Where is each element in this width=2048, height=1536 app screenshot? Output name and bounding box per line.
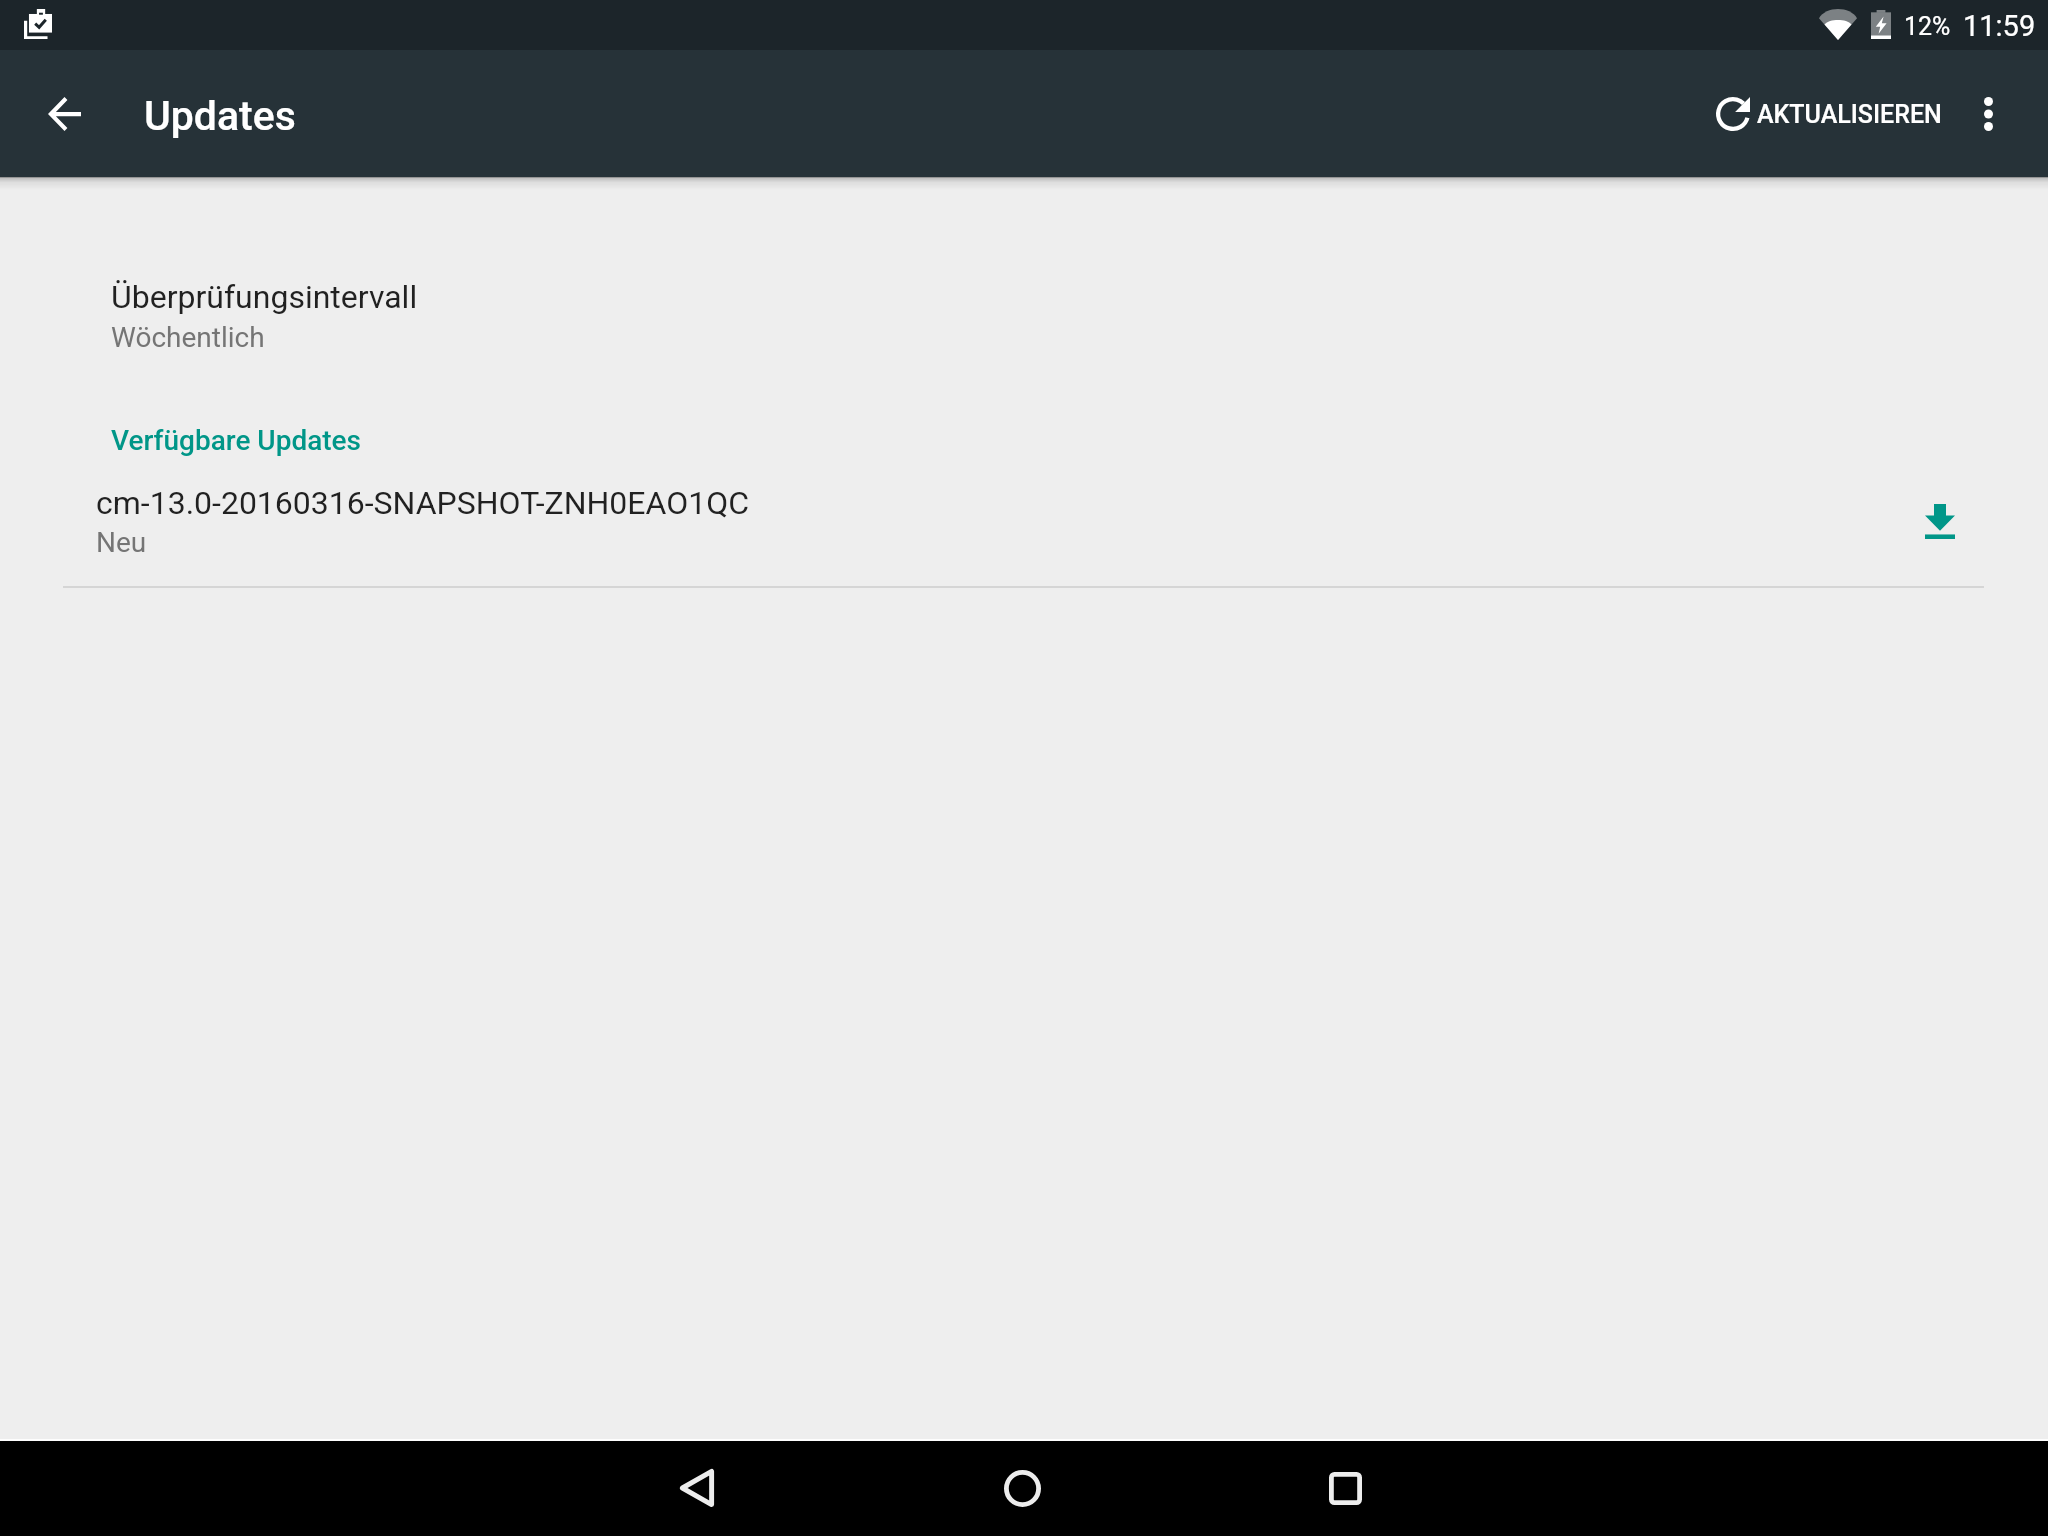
button[interactable]: Home <box>952 1441 1092 1535</box>
button[interactable]: Download <box>1894 475 1986 567</box>
staticText: Neu <box>96 526 147 559</box>
button[interactable]: Back <box>32 82 96 146</box>
button[interactable]: Recents <box>1275 1441 1415 1535</box>
button[interactable]: AKTUALISIEREN <box>1692 72 1966 156</box>
button[interactable]: Back <box>627 1441 767 1535</box>
button[interactable]: cm-13.0-20160316-SNAPSHOT-ZNH0EAO1QC <box>0 450 2048 592</box>
staticText: Wöchentlich <box>111 321 265 354</box>
staticText: 11:59 <box>1963 9 2036 43</box>
staticText: 12% <box>1904 12 1951 41</box>
staticText: Überprüfungsintervall <box>111 278 418 316</box>
button[interactable]: Überprüfungsintervall <box>0 248 2048 384</box>
staticText: Verfügbare Updates <box>111 424 362 457</box>
button[interactable]: More options <box>1942 72 2034 156</box>
staticText: AKTUALISIEREN <box>1757 100 1942 129</box>
staticText: Updates <box>144 92 296 140</box>
staticText: cm-13.0-20160316-SNAPSHOT-ZNH0EAO1QC <box>96 484 750 522</box>
